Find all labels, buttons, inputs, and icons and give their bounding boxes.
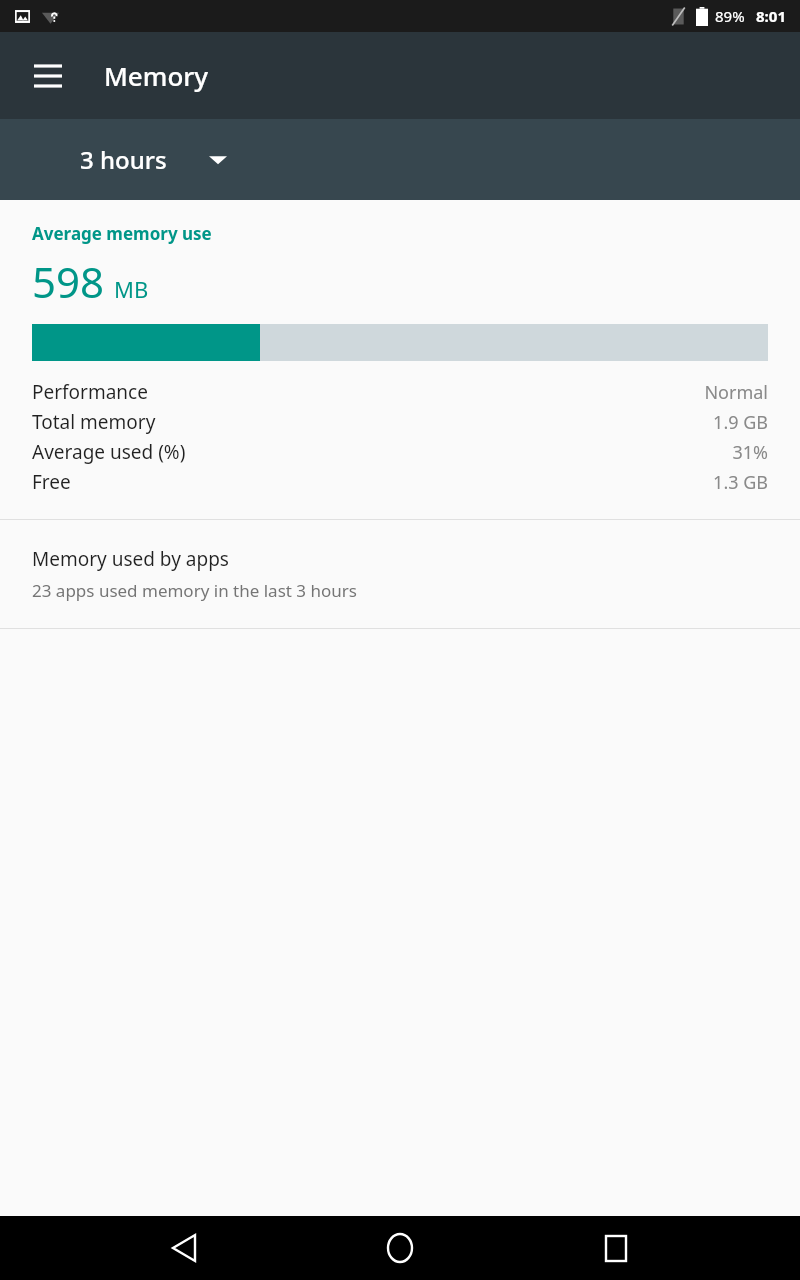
staticText: Normal xyxy=(704,380,768,405)
staticText: 23 apps used memory in the last 3 hours xyxy=(32,579,357,602)
button[interactable]: Average used (%) xyxy=(0,437,800,467)
staticText: 89% xyxy=(715,6,745,26)
staticText: 8:01 xyxy=(756,6,786,26)
staticText: 31% xyxy=(732,440,768,465)
staticText: Total memory xyxy=(32,409,156,435)
staticText: 1.9 GB xyxy=(713,410,768,435)
button[interactable]: Free xyxy=(0,467,800,497)
staticText: Memory used by apps xyxy=(32,546,229,572)
staticText: Average memory use xyxy=(32,222,212,245)
button[interactable]: Recent apps xyxy=(584,1216,648,1280)
button[interactable]: Back xyxy=(152,1216,216,1280)
staticText: 1.3 GB xyxy=(713,470,768,495)
staticText: Memory xyxy=(104,58,209,93)
staticText: 598 xyxy=(32,253,105,310)
staticText: MB xyxy=(114,274,149,304)
button[interactable]: Home xyxy=(368,1216,432,1280)
staticText: Average used (%) xyxy=(32,439,186,465)
button[interactable]: Performance xyxy=(0,377,800,407)
staticText: Performance xyxy=(32,379,148,405)
staticText: 3 hours xyxy=(80,143,167,176)
staticText: Free xyxy=(32,469,71,495)
button[interactable]: Memory used by apps xyxy=(0,520,800,628)
button[interactable]: Total memory xyxy=(0,407,800,437)
button[interactable]: Open navigation drawer xyxy=(20,48,76,104)
button[interactable]: 3 hours xyxy=(80,143,227,176)
